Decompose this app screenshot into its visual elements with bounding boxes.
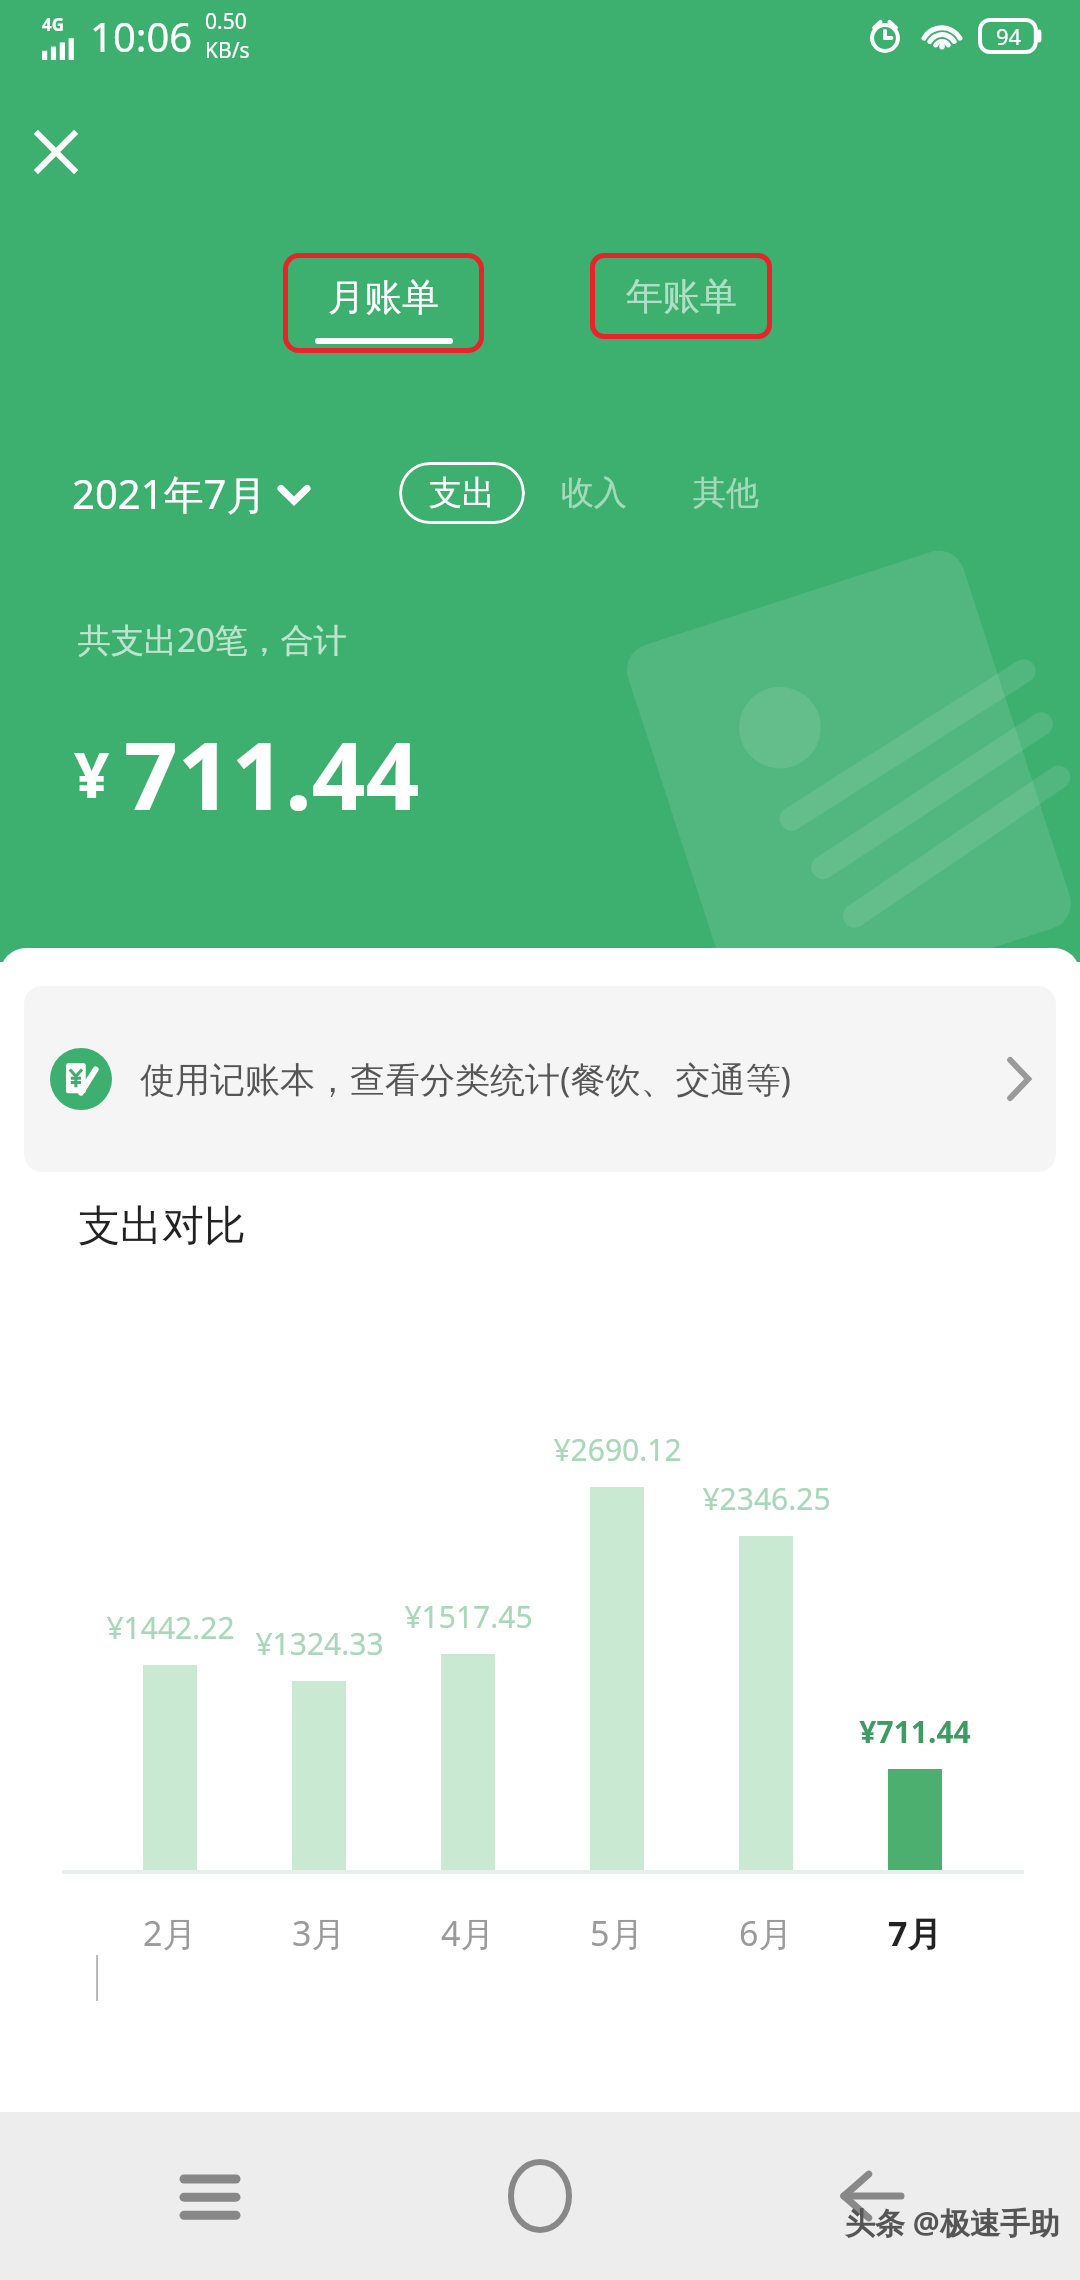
button[interactable]: Recent apps bbox=[150, 2136, 270, 2256]
staticText: 3月 bbox=[292, 1910, 346, 1956]
staticText: 其他 bbox=[693, 472, 759, 514]
staticText: 头条 @极速手助 bbox=[845, 2202, 1060, 2243]
staticText: 支出 bbox=[429, 472, 495, 514]
staticText: 4G bbox=[42, 13, 65, 36]
button[interactable]: 收入 bbox=[525, 458, 663, 528]
staticText: 5月 bbox=[590, 1910, 644, 1956]
staticText: 支出对比 bbox=[78, 1200, 246, 1253]
staticText: 94 bbox=[996, 21, 1022, 51]
staticText: 711.44 bbox=[124, 710, 420, 838]
staticText: 收入 bbox=[561, 472, 627, 514]
button[interactable]: Close bbox=[14, 110, 98, 194]
staticText: ¥711.44 bbox=[859, 1711, 971, 1752]
button[interactable]: 使用记账本，查看分类统计(餐饮、交通等) bbox=[24, 986, 1056, 1172]
staticText: 年账单 bbox=[626, 273, 737, 320]
staticText: 使用记账本，查看分类统计(餐饮、交通等) bbox=[140, 1055, 992, 1103]
staticText: 共支出20笔，合计 bbox=[78, 617, 347, 662]
staticText: 2月 bbox=[143, 1910, 197, 1956]
staticText: 6月 bbox=[739, 1910, 793, 1956]
button[interactable]: 月账单 bbox=[283, 253, 484, 353]
button[interactable]: Home bbox=[480, 2136, 600, 2256]
staticText: ¥1324.33 bbox=[255, 1623, 384, 1664]
staticText: 10:06 bbox=[90, 9, 193, 63]
staticText: ¥1442.22 bbox=[106, 1607, 235, 1648]
staticText: 月账单 bbox=[328, 274, 439, 321]
button[interactable]: 2021年7月 bbox=[72, 466, 307, 521]
button[interactable]: 年账单 bbox=[590, 253, 772, 339]
staticText: ¥ bbox=[74, 732, 110, 816]
staticText: 7月 bbox=[888, 1910, 942, 1956]
staticText: 2021年7月 bbox=[72, 466, 267, 521]
button[interactable]: Back bbox=[810, 2136, 930, 2256]
button[interactable]: 支出 bbox=[399, 462, 525, 524]
staticText: ¥1517.45 bbox=[404, 1596, 533, 1637]
staticText: ¥2690.12 bbox=[553, 1429, 682, 1470]
staticText: KB/s bbox=[205, 36, 250, 65]
staticText: 4月 bbox=[441, 1910, 495, 1956]
staticText: 0.50 bbox=[205, 7, 247, 36]
button[interactable]: 其他 bbox=[663, 458, 789, 528]
staticText: ¥2346.25 bbox=[702, 1478, 831, 1519]
